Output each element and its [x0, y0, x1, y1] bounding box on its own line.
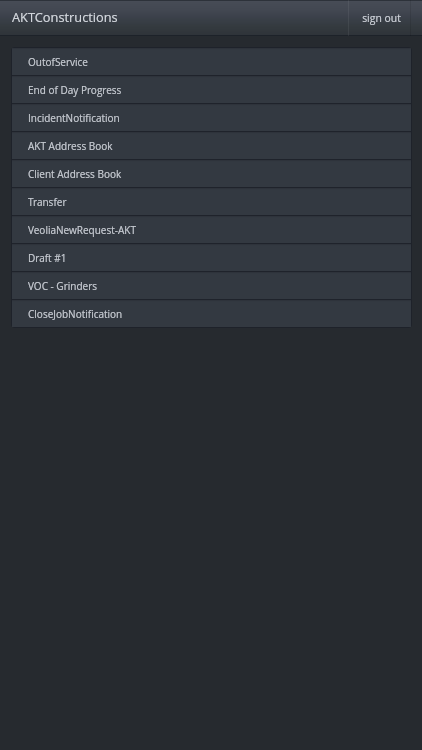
button[interactable]: Draft #1	[12, 244, 411, 271]
button[interactable]: Transfer	[12, 188, 411, 215]
button[interactable]: Sign out	[348, 0, 411, 36]
button[interactable]: CloseJobNotification	[12, 300, 411, 327]
staticText: VOC - Grinders	[28, 279, 97, 293]
staticText: Client Address Book	[28, 167, 122, 181]
button[interactable]: AKT Address Book	[12, 132, 411, 159]
button[interactable]: End of Day Progress	[12, 76, 411, 103]
staticText: Draft #1	[28, 251, 67, 265]
staticText: Transfer	[28, 195, 67, 209]
staticText: OutofService	[28, 55, 88, 69]
staticText: End of Day Progress	[28, 83, 122, 97]
staticText: AKTConstructions	[12, 8, 118, 25]
button[interactable]: OutofService	[12, 48, 411, 75]
staticText: VeoliaNewRequest-AKT	[28, 223, 136, 237]
staticText: sign out	[362, 11, 401, 25]
staticText: AKT Address Book	[28, 139, 113, 153]
staticText: CloseJobNotification	[28, 307, 123, 321]
button[interactable]: VeoliaNewRequest-AKT	[12, 216, 411, 243]
button[interactable]: Client Address Book	[12, 160, 411, 187]
staticText: IncidentNotification	[28, 111, 120, 125]
button[interactable]: IncidentNotification	[12, 104, 411, 131]
button[interactable]: VOC - Grinders	[12, 272, 411, 299]
